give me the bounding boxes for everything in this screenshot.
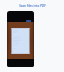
button[interactable]: Scanner preview — [7, 11, 34, 67]
button[interactable]: Scan files into PDF — [0, 0, 64, 11]
button[interactable]: Save scan — [26, 20, 31, 22]
staticText: Scan files into PDF — [19, 4, 46, 8]
